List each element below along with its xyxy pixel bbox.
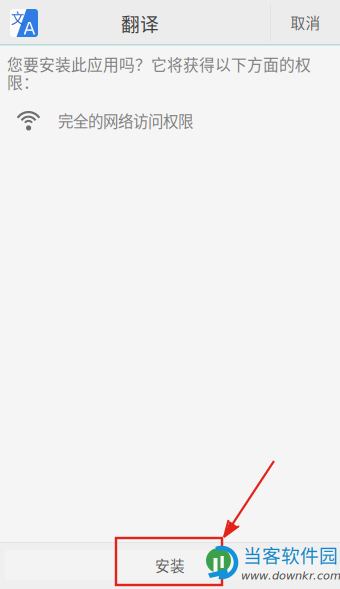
button[interactable]: 取消 (270, 0, 340, 44)
staticText: 当客软件园 (243, 541, 338, 568)
staticText: www.downkr.com (241, 569, 340, 582)
staticText: A (23, 18, 35, 39)
staticText: 您要安装此应用吗？它将获得以下方面的权限： (7, 52, 311, 93)
staticText: 安装 (155, 554, 185, 576)
staticText: 取消 (290, 11, 320, 33)
button[interactable]: 安装 (5, 550, 335, 580)
staticText: 完全的网络访问权限 (58, 109, 193, 132)
staticText: 翻译 (121, 9, 159, 36)
staticText: 文 (11, 8, 24, 27)
